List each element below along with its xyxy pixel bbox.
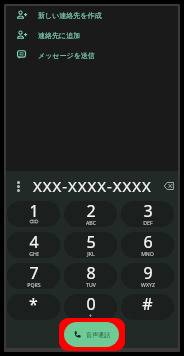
button[interactable]: 5 bbox=[64, 232, 117, 258]
button[interactable]: 連絡先に追加 bbox=[6, 25, 178, 45]
staticText: 1 bbox=[29, 201, 39, 222]
button[interactable]: 6 bbox=[121, 232, 174, 258]
button[interactable]: Backspace bbox=[161, 178, 177, 194]
staticText: メッセージを送信 bbox=[38, 51, 95, 60]
button[interactable]: 0 bbox=[64, 294, 117, 320]
staticText: 連絡先に追加 bbox=[38, 31, 81, 40]
button[interactable]: 4 bbox=[7, 232, 60, 258]
staticText: 音声通話 bbox=[86, 331, 110, 339]
staticText: + bbox=[89, 312, 92, 319]
staticText: 4 bbox=[29, 232, 39, 253]
staticText: 3 bbox=[143, 201, 153, 222]
button[interactable]: 新しい連絡先を作成 bbox=[6, 5, 178, 25]
button[interactable]: 8 bbox=[64, 263, 117, 289]
button[interactable]: * bbox=[7, 294, 60, 320]
staticText: GHI bbox=[29, 250, 39, 257]
staticText: # bbox=[142, 294, 153, 315]
staticText: * bbox=[29, 294, 38, 315]
staticText: JKL bbox=[87, 250, 95, 257]
button[interactable]: 2 bbox=[64, 201, 117, 227]
button[interactable]: 7 bbox=[7, 263, 60, 289]
staticText: 0 bbox=[86, 294, 96, 315]
button[interactable]: メッセージを送信 bbox=[6, 45, 178, 65]
button[interactable]: 1 bbox=[7, 201, 60, 227]
staticText: 6 bbox=[143, 232, 153, 253]
staticText: XXX-XXXX-XXXX bbox=[33, 176, 152, 196]
staticText: WXYZ bbox=[141, 281, 155, 288]
staticText: MNO bbox=[141, 250, 154, 257]
staticText: 9 bbox=[143, 263, 153, 284]
staticText: 7 bbox=[29, 263, 39, 284]
staticText: DEF bbox=[143, 219, 153, 226]
button[interactable]: 9 bbox=[121, 263, 174, 289]
staticText: TUV bbox=[86, 281, 96, 288]
staticText: 5 bbox=[86, 232, 96, 253]
staticText: 新しい連絡先を作成 bbox=[38, 11, 102, 20]
staticText: 8 bbox=[86, 263, 96, 284]
staticText: ABC bbox=[86, 219, 96, 226]
staticText: PQRS bbox=[27, 281, 41, 288]
button[interactable]: 音声通話 bbox=[64, 322, 119, 347]
button[interactable]: 3 bbox=[121, 201, 174, 227]
button[interactable]: # bbox=[121, 294, 174, 320]
button[interactable]: More options bbox=[11, 176, 25, 196]
staticText: 2 bbox=[86, 201, 96, 222]
